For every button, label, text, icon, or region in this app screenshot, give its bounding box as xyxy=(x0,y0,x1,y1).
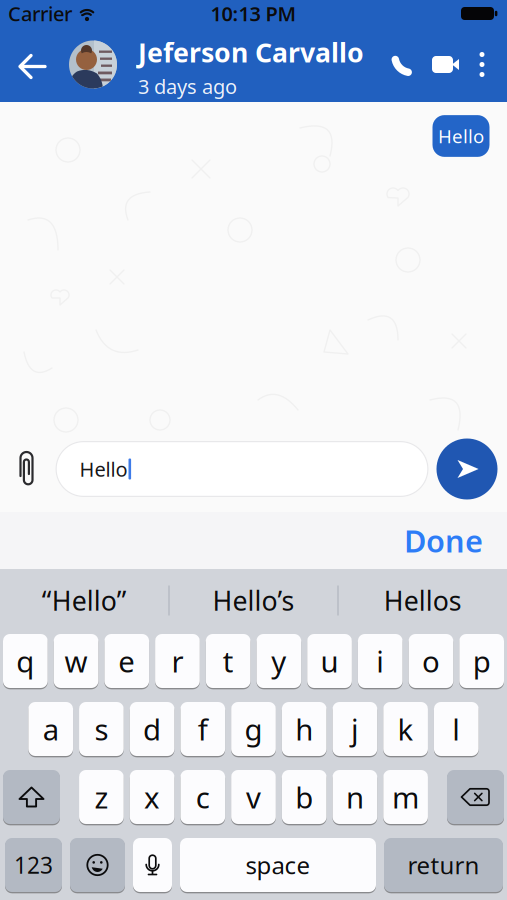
button[interactable] xyxy=(389,50,417,78)
staticText: r xyxy=(171,641,183,680)
staticText: Hello xyxy=(438,124,484,148)
staticText: m xyxy=(392,777,419,816)
staticText: Hello xyxy=(79,456,127,482)
staticText: d xyxy=(143,709,161,748)
staticText: i xyxy=(376,641,384,680)
staticText: c xyxy=(196,777,210,816)
button[interactable]: Hello’s xyxy=(169,569,337,632)
button[interactable]: Hellos xyxy=(338,569,507,632)
button[interactable]: i xyxy=(358,634,403,688)
staticText: u xyxy=(321,641,339,680)
staticText: k xyxy=(398,709,414,748)
button[interactable]: w xyxy=(54,634,98,688)
button[interactable]: k xyxy=(383,702,428,756)
button[interactable] xyxy=(432,55,462,74)
staticText: Carrier xyxy=(8,0,72,27)
staticText: x xyxy=(144,777,160,816)
button[interactable]: c xyxy=(180,770,225,824)
button[interactable] xyxy=(70,838,125,892)
button[interactable]: Done xyxy=(404,520,483,561)
staticText: a xyxy=(43,709,59,748)
staticText: return xyxy=(407,849,479,881)
button[interactable]: y xyxy=(256,634,301,688)
staticText: h xyxy=(295,709,313,748)
button[interactable]: space xyxy=(180,838,376,892)
button[interactable]: o xyxy=(409,634,453,688)
button[interactable] xyxy=(18,51,47,77)
button[interactable]: j xyxy=(333,702,377,756)
button[interactable]: v xyxy=(231,770,276,824)
staticText: t xyxy=(223,641,234,680)
staticText: space xyxy=(245,849,310,881)
staticText: f xyxy=(198,709,208,748)
button[interactable]: x xyxy=(130,770,174,824)
button[interactable]: l xyxy=(434,702,479,756)
button[interactable] xyxy=(447,770,504,824)
button[interactable]: n xyxy=(333,770,377,824)
staticText: b xyxy=(295,777,313,816)
staticText: n xyxy=(346,777,364,816)
button[interactable] xyxy=(16,450,37,488)
button[interactable]: r xyxy=(155,634,200,688)
button[interactable]: return xyxy=(384,838,503,892)
button[interactable] xyxy=(133,838,172,892)
button[interactable]: “Hello” xyxy=(0,569,168,632)
staticText: Jeferson Carvallo xyxy=(138,34,364,70)
staticText: o xyxy=(422,641,440,680)
button[interactable]: b xyxy=(282,770,327,824)
staticText: 123 xyxy=(14,850,53,880)
staticText: z xyxy=(94,777,108,816)
button[interactable] xyxy=(436,438,497,499)
button[interactable]: d xyxy=(130,702,174,756)
staticText: Hellos xyxy=(384,583,462,618)
button[interactable]: m xyxy=(383,770,428,824)
button[interactable] xyxy=(479,52,484,77)
staticText: Done xyxy=(404,520,483,561)
staticText: g xyxy=(244,709,262,748)
staticText: 10:13 PM xyxy=(210,0,296,27)
staticText: q xyxy=(16,641,34,680)
button[interactable]: p xyxy=(459,634,504,688)
button[interactable]: s xyxy=(79,702,124,756)
button[interactable]: t xyxy=(206,634,250,688)
staticText: Hello’s xyxy=(212,583,294,618)
button[interactable]: f xyxy=(180,702,225,756)
button[interactable]: q xyxy=(3,634,48,688)
staticText: l xyxy=(452,709,460,748)
staticText: w xyxy=(65,641,88,680)
staticText: y xyxy=(271,641,286,680)
button[interactable]: h xyxy=(282,702,327,756)
button[interactable]: z xyxy=(79,770,124,824)
button[interactable]: e xyxy=(104,634,149,688)
staticText: 3 days ago xyxy=(138,73,237,99)
staticText: e xyxy=(118,641,135,680)
staticText: j xyxy=(351,709,359,748)
staticText: v xyxy=(246,777,261,816)
button[interactable]: u xyxy=(307,634,352,688)
button[interactable]: g xyxy=(231,702,276,756)
staticText: s xyxy=(94,709,108,748)
staticText: “Hello” xyxy=(42,583,127,618)
button[interactable]: a xyxy=(28,702,73,756)
button[interactable]: 123 xyxy=(5,838,62,892)
staticText: p xyxy=(473,641,491,680)
button[interactable] xyxy=(3,770,60,824)
